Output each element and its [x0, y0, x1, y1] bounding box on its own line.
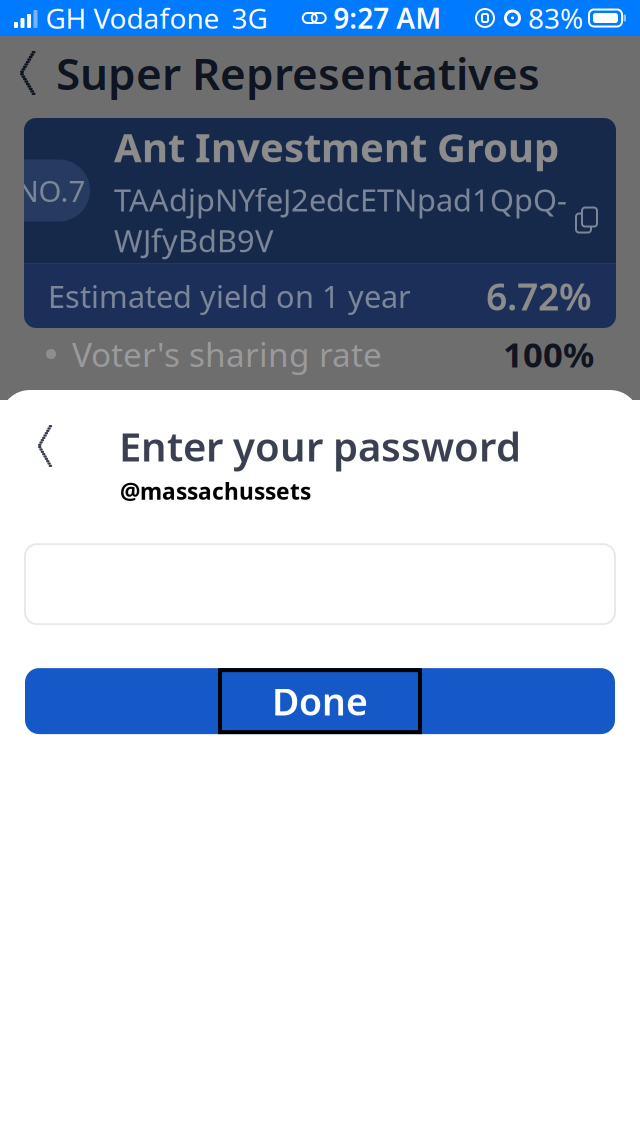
- staticText: TAAdjpNYfeJ2edcETNpad1QpQWJfyBdB9V: [114, 179, 567, 261]
- staticText: Estimated yield on 1 year: [48, 276, 411, 316]
- staticText: 9:27 AM: [333, 0, 441, 37]
- staticText: Done: [272, 676, 368, 726]
- staticText: 100%: [503, 331, 594, 377]
- staticText: 83%: [528, 0, 583, 37]
- staticText: 6.72%: [486, 271, 592, 321]
- staticText: NO.7: [16, 171, 85, 210]
- staticText: Voter's sharing rate: [72, 332, 382, 376]
- button[interactable]: Back: [6, 44, 50, 102]
- staticText: Enter your password: [119, 419, 521, 472]
- staticText: Super Representatives: [56, 44, 540, 102]
- staticText: 3G: [231, 0, 267, 37]
- staticText: Ant Investment Group: [114, 120, 559, 173]
- staticText: GH Vodafone: [45, 0, 219, 37]
- staticText: @massachussets: [120, 476, 311, 506]
- button[interactable]: Done: [25, 668, 615, 734]
- button[interactable]: Back: [22, 418, 69, 474]
